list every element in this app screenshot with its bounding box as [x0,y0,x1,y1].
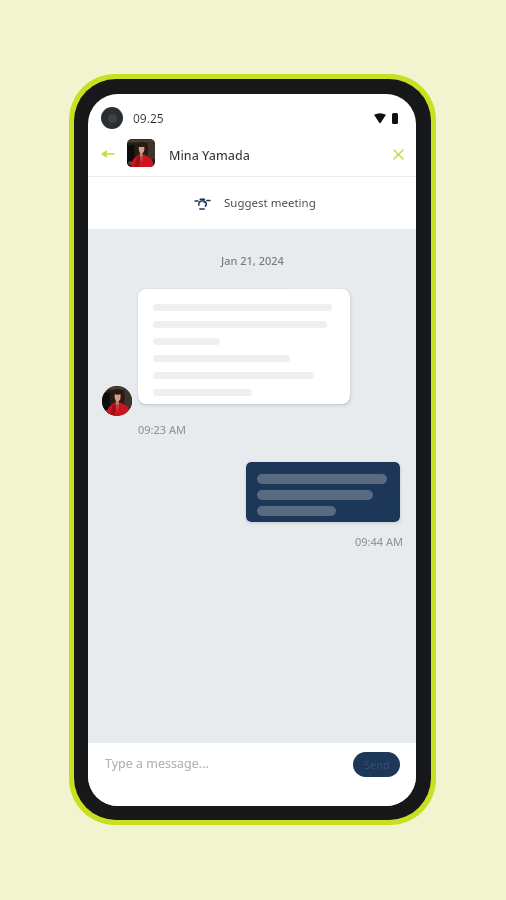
button[interactable]: Suggest meeting [88,177,416,229]
button[interactable]: Send [353,752,400,777]
staticText: Jan 21, 2024 [221,253,284,268]
button[interactable]: Mina Yamada [127,132,250,174]
button[interactable]: Close [387,143,409,165]
staticText: Send [364,757,390,772]
staticText: 09.25 [133,110,164,126]
staticText: Suggest meeting [224,195,316,211]
button[interactable]: Back [96,143,118,165]
button[interactable]: Type a message... [88,745,338,785]
staticText: 09:23 AM [138,422,186,437]
staticText: Mina Yamada [169,147,250,164]
staticText: Type a message... [105,755,209,772]
staticText: 09:44 AM [355,534,403,549]
